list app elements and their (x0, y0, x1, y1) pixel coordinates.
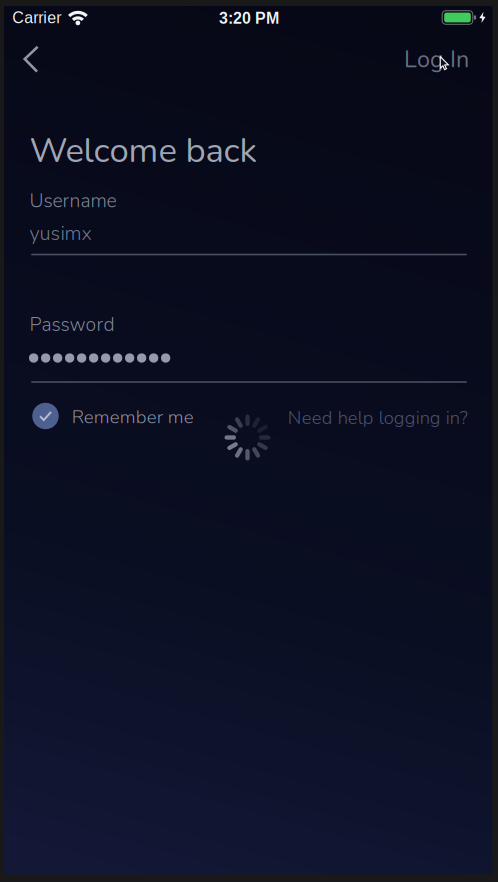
staticText: Need help logging in? (288, 405, 468, 431)
staticText: Carrier (12, 9, 61, 27)
staticText: Welcome back (29, 127, 256, 174)
staticText: Username (29, 188, 116, 214)
button[interactable]: Remember me (32, 404, 194, 430)
button[interactable]: Log In (396, 36, 477, 83)
staticText: yusimx (29, 220, 91, 247)
secureTextField[interactable]: •••••••••••• (31, 342, 467, 382)
staticText: Log In (404, 44, 469, 75)
button[interactable]: Need help logging in? (288, 405, 468, 431)
textField[interactable]: yusimx (31, 218, 467, 256)
button[interactable]: Back (13, 35, 49, 83)
staticText: Password (29, 311, 114, 338)
staticText: Remember me (72, 404, 194, 430)
staticText: 3:20 PM (219, 9, 279, 27)
